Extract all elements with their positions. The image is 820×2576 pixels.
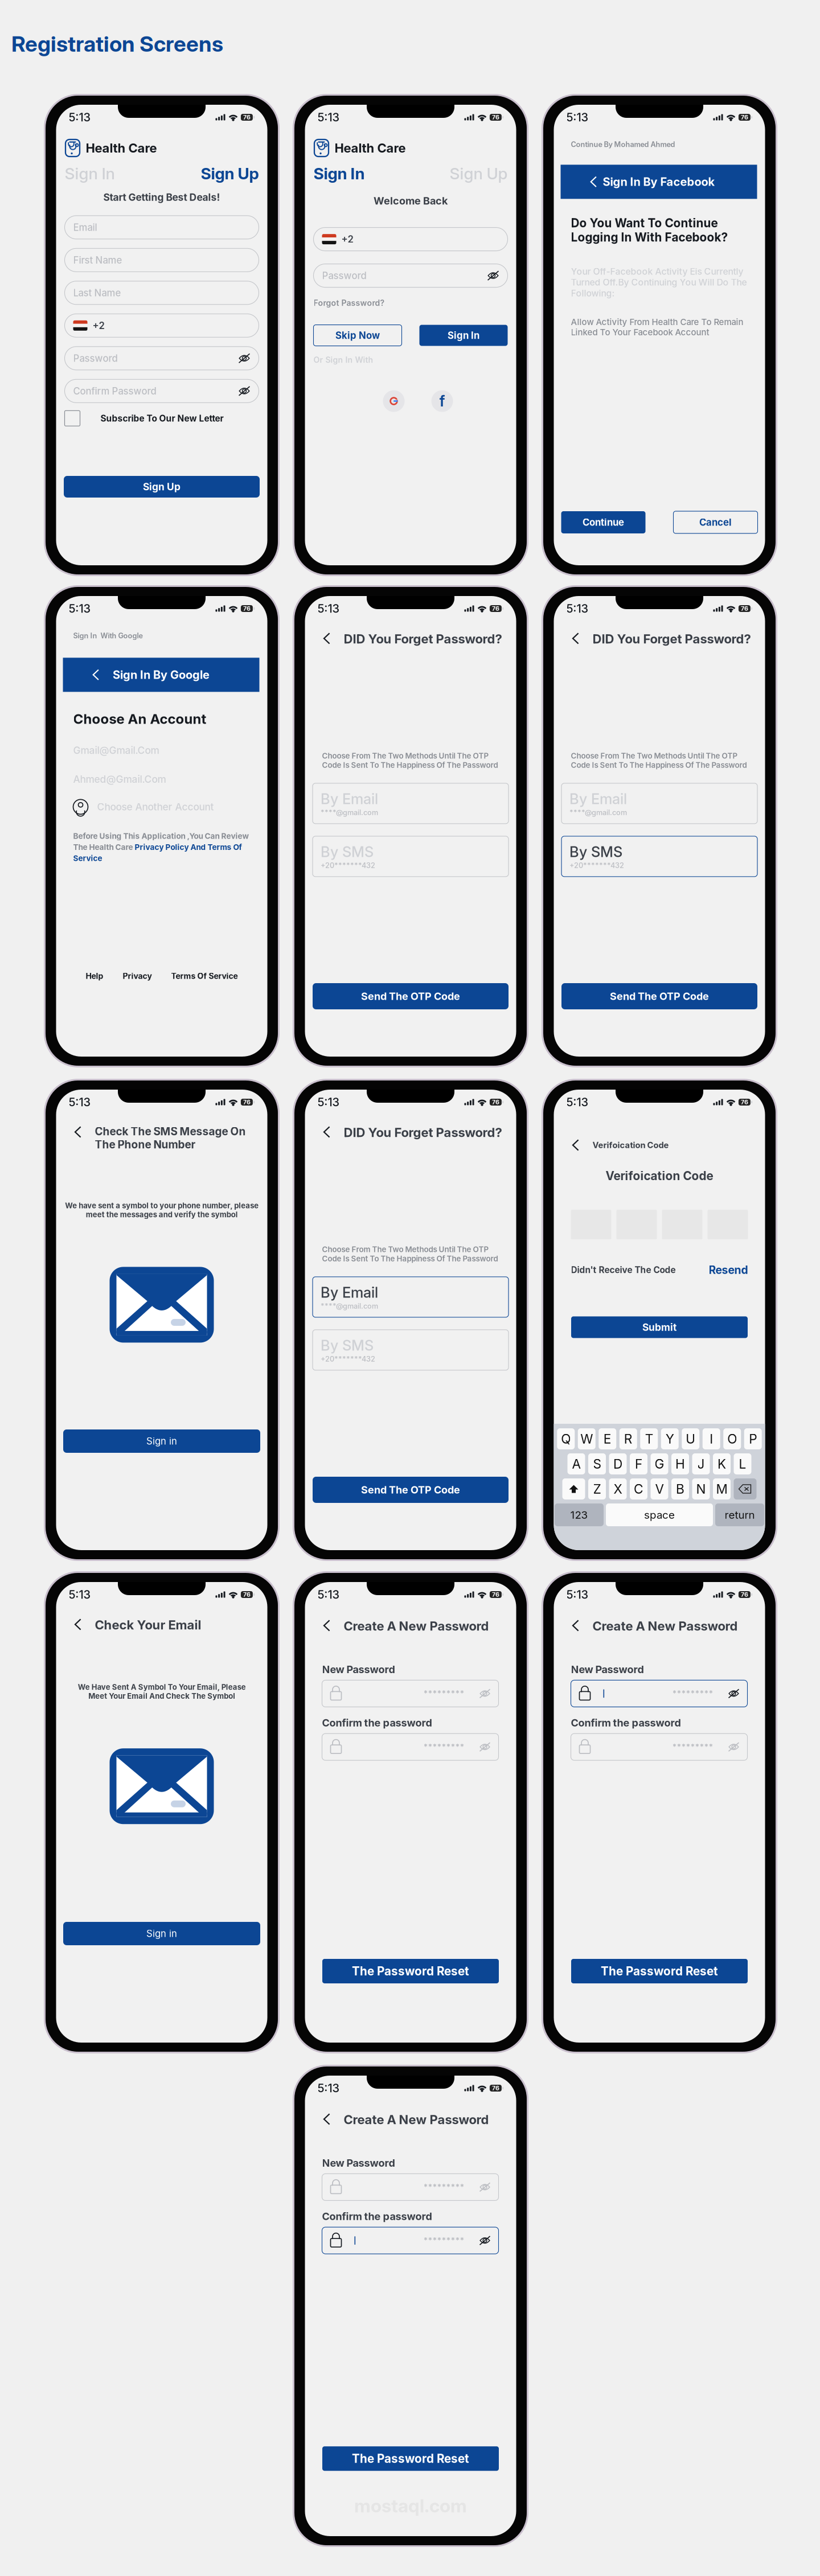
button[interactable]: Backspace — [734, 1478, 757, 1499]
button[interactable]: Resend — [709, 1263, 748, 1277]
button[interactable]: Sign In — [65, 164, 115, 183]
button[interactable]: G — [651, 1453, 668, 1474]
button[interactable]: Privacy — [123, 971, 152, 981]
staticText: W — [580, 1431, 593, 1447]
button[interactable]: 123 — [555, 1503, 604, 1526]
button[interactable]: D — [609, 1453, 627, 1474]
button[interactable]: Submit — [571, 1316, 748, 1338]
button[interactable]: Back — [320, 1618, 333, 1632]
button[interactable]: U — [682, 1428, 699, 1449]
button[interactable]: Sign in with Google — [383, 390, 405, 412]
button[interactable]: L — [734, 1453, 751, 1474]
button[interactable]: Back — [569, 1618, 582, 1632]
button[interactable]: Sign in — [63, 1429, 260, 1453]
button[interactable]: Y — [661, 1428, 679, 1449]
button[interactable]: Back — [320, 1125, 333, 1139]
button[interactable]: Back — [569, 1139, 582, 1152]
button[interactable]: By Email — [313, 783, 509, 824]
button[interactable]: Send The OTP Code — [313, 1477, 509, 1503]
button[interactable]: By Email — [313, 1277, 509, 1317]
button[interactable]: Q — [557, 1428, 575, 1449]
staticText: return — [725, 1508, 755, 1521]
button[interactable]: P — [744, 1428, 762, 1449]
button[interactable]: O — [723, 1428, 741, 1449]
staticText: ********* — [672, 1742, 713, 1752]
staticText: Send The OTP Code — [610, 990, 709, 1002]
staticText: 5:13 — [69, 1588, 91, 1601]
button[interactable]: N — [692, 1478, 710, 1499]
staticText: ********* — [423, 1742, 464, 1752]
button[interactable]: Send The OTP Code — [313, 983, 509, 1009]
button[interactable]: Back — [320, 2112, 333, 2126]
button[interactable]: A — [567, 1453, 585, 1474]
button[interactable]: Sign in — [63, 1922, 260, 1945]
button[interactable]: Sign In By Facebook — [561, 165, 757, 199]
staticText: S — [593, 1456, 601, 1472]
button[interactable]: Shift — [562, 1478, 585, 1499]
staticText: 76 — [243, 114, 250, 121]
button[interactable]: Sign In — [419, 325, 508, 346]
button[interactable]: Terms Of Service — [171, 971, 238, 981]
staticText: ****@gmail.com — [321, 1302, 378, 1310]
button[interactable]: Sign in with Facebook — [431, 390, 453, 412]
button[interactable]: Cancel — [673, 511, 758, 533]
button[interactable]: M — [713, 1478, 731, 1499]
staticText: P — [749, 1431, 757, 1447]
button[interactable]: V — [651, 1478, 668, 1499]
staticText: Confirm the password — [571, 1717, 681, 1729]
button[interactable]: I — [703, 1428, 720, 1449]
button[interactable]: The Password Reset — [571, 1959, 748, 1983]
button[interactable]: space — [606, 1503, 713, 1526]
button[interactable]: Back — [71, 1617, 85, 1631]
button[interactable]: C — [630, 1478, 647, 1499]
button[interactable]: Back — [320, 631, 333, 645]
button[interactable]: Gmail@Gmail.Com — [73, 744, 250, 756]
button[interactable]: Service — [73, 853, 102, 863]
button[interactable]: Help — [86, 971, 103, 981]
button[interactable]: J — [692, 1453, 710, 1474]
button[interactable]: B — [671, 1478, 689, 1499]
button[interactable]: By SMS — [313, 836, 509, 877]
button[interactable]: Ahmed@Gmail.Com — [73, 773, 250, 785]
staticText: Do You Want To Continue Logging In With … — [571, 216, 728, 244]
staticText: N — [696, 1481, 706, 1497]
button[interactable]: Continue — [561, 511, 645, 533]
button[interactable]: By SMS — [313, 1330, 509, 1370]
button[interactable]: Sign In — [313, 164, 365, 183]
button[interactable]: S — [588, 1453, 606, 1474]
button[interactable]: Choose Another Account — [73, 799, 250, 814]
button[interactable]: F — [630, 1453, 647, 1474]
staticText: +20*******432 — [321, 861, 375, 870]
staticText: 76 — [492, 2084, 499, 2092]
button[interactable]: Sign Up — [64, 476, 260, 498]
button[interactable]: X — [609, 1478, 627, 1499]
button[interactable]: By SMS — [561, 836, 757, 877]
button[interactable]: Z — [588, 1478, 606, 1499]
button[interactable]: Privacy Policy And Terms Of — [135, 842, 242, 852]
staticText: We Have Sent A Symbol To Your Email, Ple… — [78, 1683, 246, 1701]
button[interactable]: K — [713, 1453, 731, 1474]
button[interactable]: Subscribe to our newsletter — [65, 411, 80, 426]
button[interactable]: The Password Reset — [322, 2446, 499, 2471]
button[interactable]: Sign In By Google — [63, 658, 259, 692]
button[interactable]: Back — [569, 631, 582, 645]
button[interactable]: Forgot Password? — [313, 298, 385, 308]
button[interactable]: return — [715, 1503, 764, 1526]
staticText: Choose An Account — [73, 711, 206, 727]
staticText: +20*******432 — [569, 861, 624, 870]
button[interactable]: R — [619, 1428, 637, 1449]
button[interactable]: Send The OTP Code — [561, 983, 757, 1009]
button[interactable]: T — [640, 1428, 658, 1449]
staticText: Your Off-Facebook Activity Eis Currently… — [571, 266, 747, 299]
button[interactable]: H — [671, 1453, 689, 1474]
button[interactable]: E — [599, 1428, 616, 1449]
staticText: By SMS — [321, 1337, 374, 1354]
button[interactable]: Back — [71, 1125, 85, 1139]
button[interactable]: The Password Reset — [322, 1959, 499, 1983]
button[interactable]: Sign Up — [450, 164, 508, 183]
staticText: Health Care — [335, 140, 406, 156]
button[interactable]: W — [578, 1428, 596, 1449]
button[interactable]: By Email — [561, 783, 757, 824]
button[interactable]: Sign Up — [201, 164, 259, 183]
button[interactable]: Skip Now — [313, 325, 402, 346]
